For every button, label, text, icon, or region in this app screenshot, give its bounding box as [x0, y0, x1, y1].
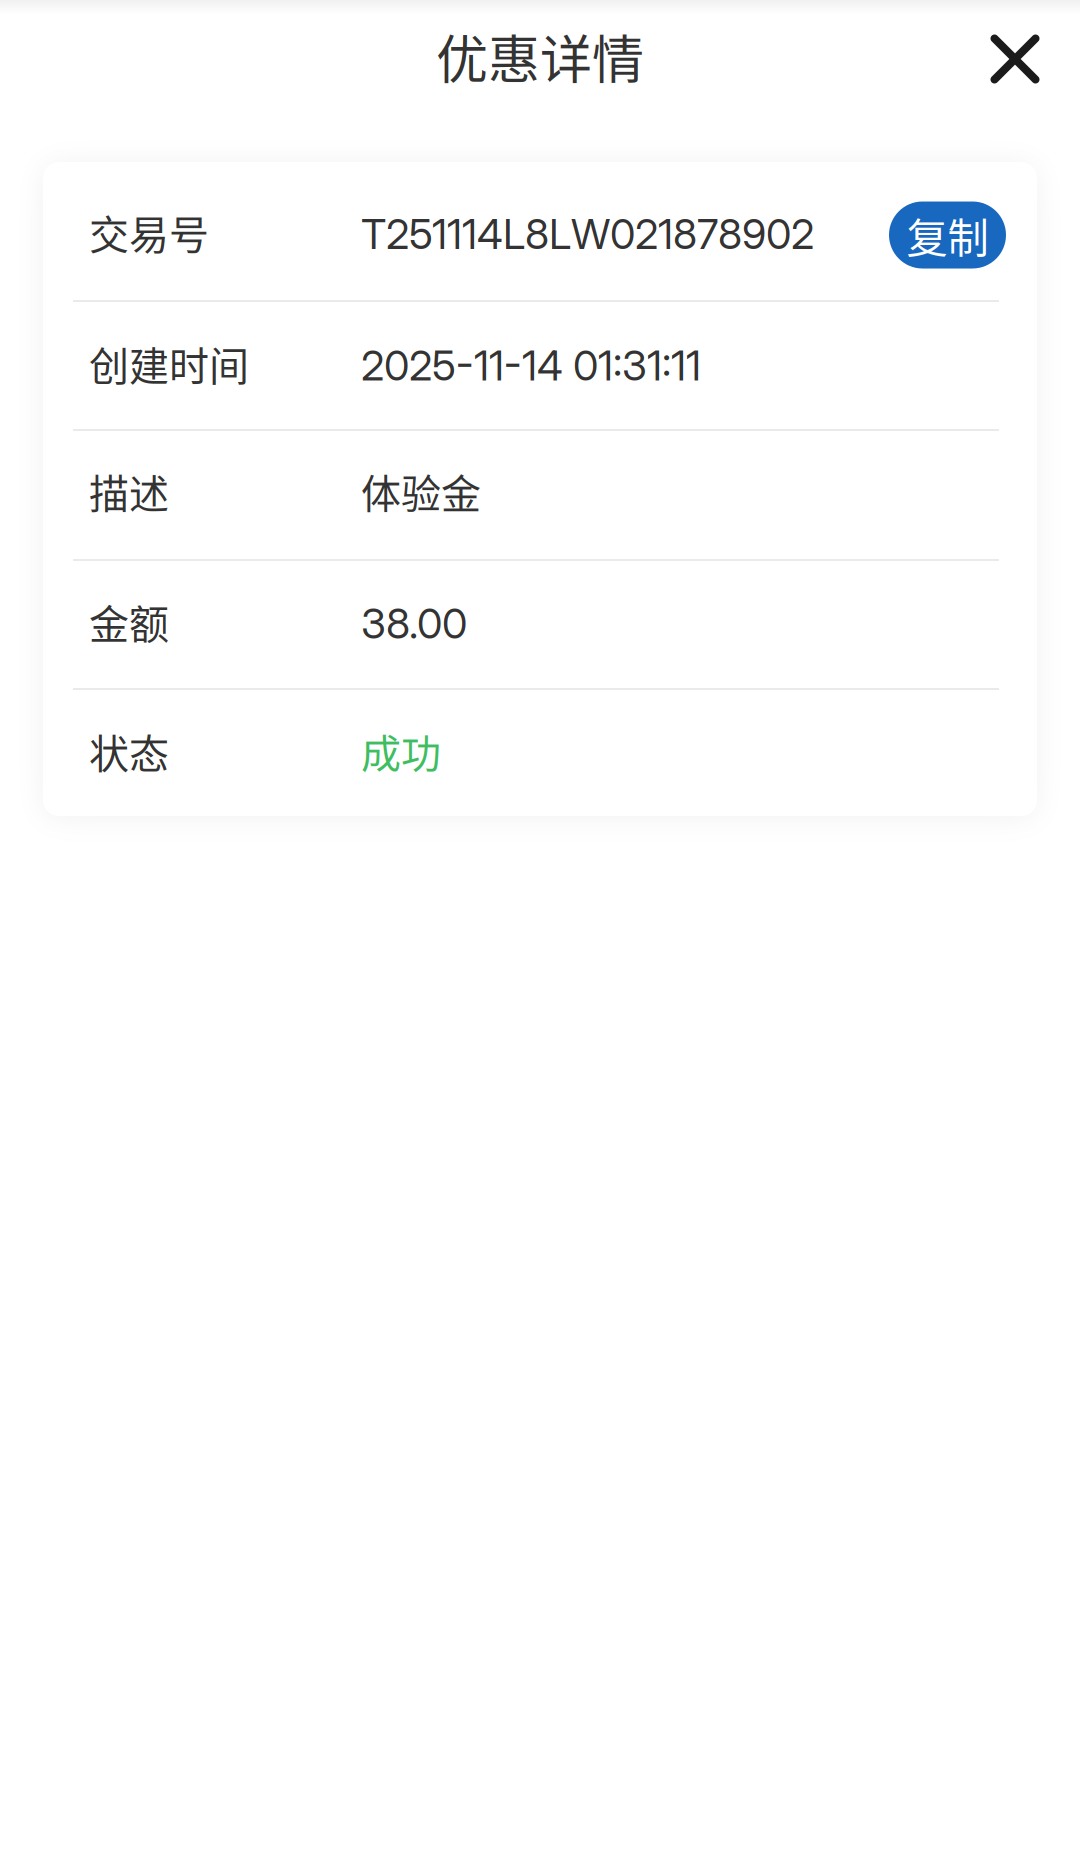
button[interactable]: Close — [969, 13, 1061, 105]
staticText: 成功 — [361, 722, 441, 780]
staticText: 金额 — [89, 592, 169, 650]
staticText: 描述 — [89, 462, 169, 520]
staticText: 优惠详情 — [436, 18, 644, 94]
staticText: T251114L8LW021878902 — [361, 209, 814, 259]
staticText: 交易号 — [89, 203, 209, 261]
staticText: 创建时间 — [89, 334, 249, 392]
staticText: 2025-11-14 01:31:11 — [361, 340, 701, 390]
staticText: 38.00 — [361, 598, 467, 648]
staticText: 状态 — [89, 722, 169, 780]
staticText: 体验金 — [361, 462, 481, 520]
button[interactable]: 复制 — [889, 201, 1006, 268]
staticText: 复制 — [906, 205, 988, 265]
